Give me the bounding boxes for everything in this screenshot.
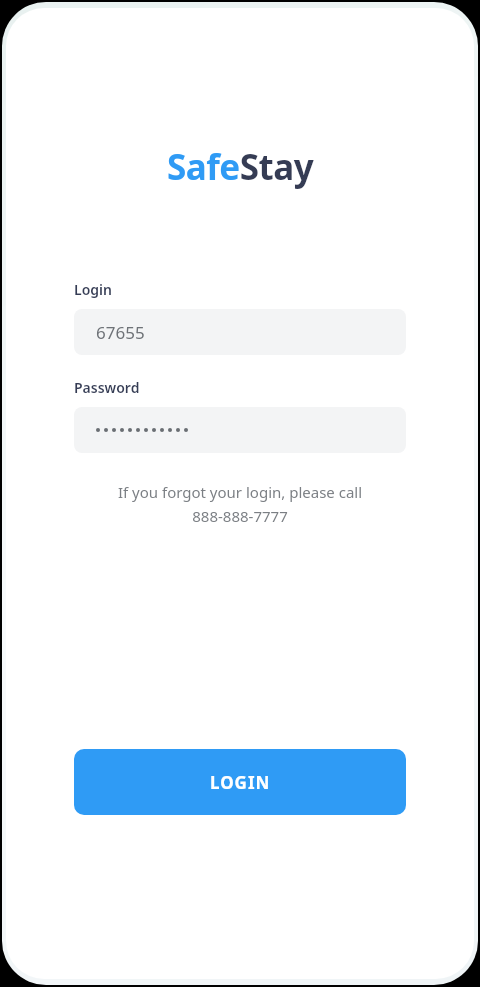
staticText: SafeStay bbox=[167, 143, 314, 191]
staticText: Password bbox=[74, 378, 140, 397]
button[interactable]: 67655 bbox=[74, 309, 406, 355]
button[interactable]: LOGIN bbox=[74, 749, 406, 815]
staticText: 67655 bbox=[96, 321, 145, 344]
staticText: Login bbox=[74, 280, 112, 299]
staticText: LOGIN bbox=[210, 771, 271, 794]
button[interactable] bbox=[74, 407, 406, 453]
staticText: If you forgot your login, please call 88… bbox=[74, 482, 406, 526]
